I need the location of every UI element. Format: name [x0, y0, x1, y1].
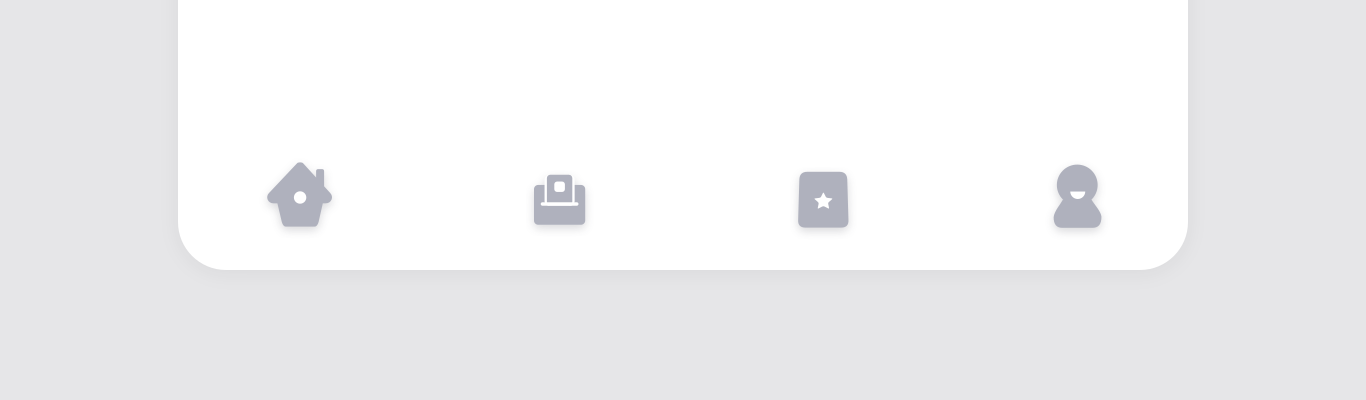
button[interactable]: Rewards: [690, 150, 957, 246]
button[interactable]: Home: [170, 150, 429, 246]
button[interactable]: Inbox: [429, 150, 690, 246]
button[interactable]: Profile: [957, 150, 1198, 246]
